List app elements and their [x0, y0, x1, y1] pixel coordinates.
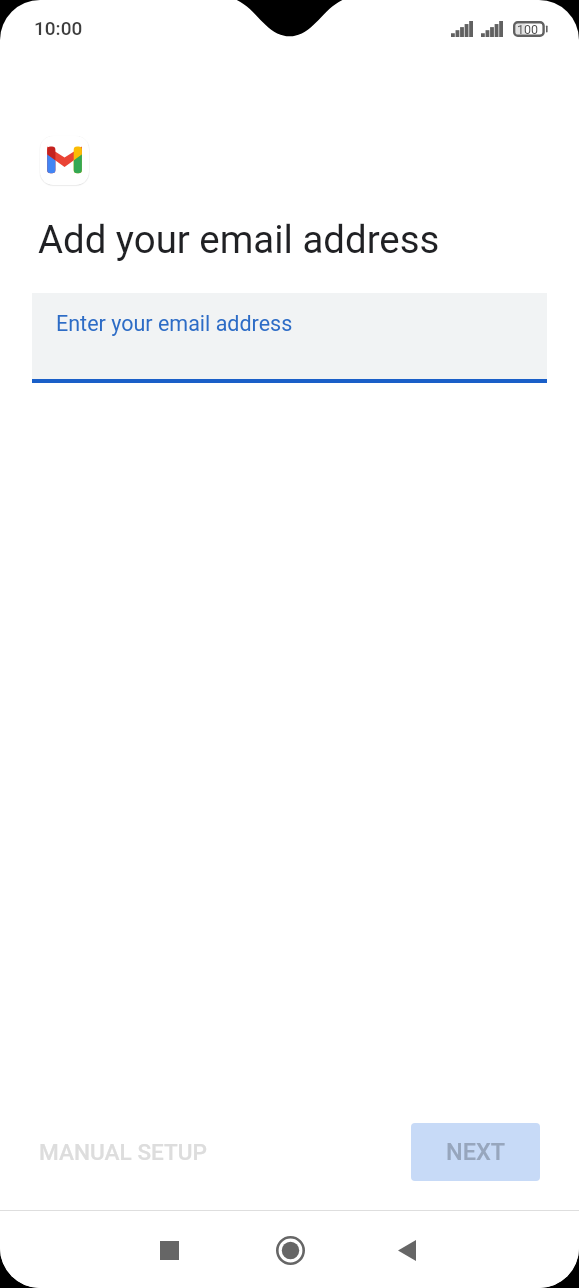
button[interactable]: Recent apps — [135, 1216, 203, 1284]
button[interactable]: MANUAL SETUP — [21, 1125, 226, 1179]
staticText: Add your email address — [38, 217, 440, 262]
staticText: Enter your email address — [56, 311, 293, 336]
button[interactable]: Enter your email address — [32, 293, 547, 383]
staticText: 100 — [517, 22, 539, 37]
button[interactable]: NEXT — [411, 1123, 540, 1181]
staticText: NEXT — [446, 1138, 506, 1166]
staticText: 10:00 — [34, 17, 83, 39]
staticText: MANUAL SETUP — [39, 1139, 208, 1165]
button[interactable]: Home — [256, 1216, 324, 1284]
button[interactable]: Back — [373, 1216, 441, 1284]
